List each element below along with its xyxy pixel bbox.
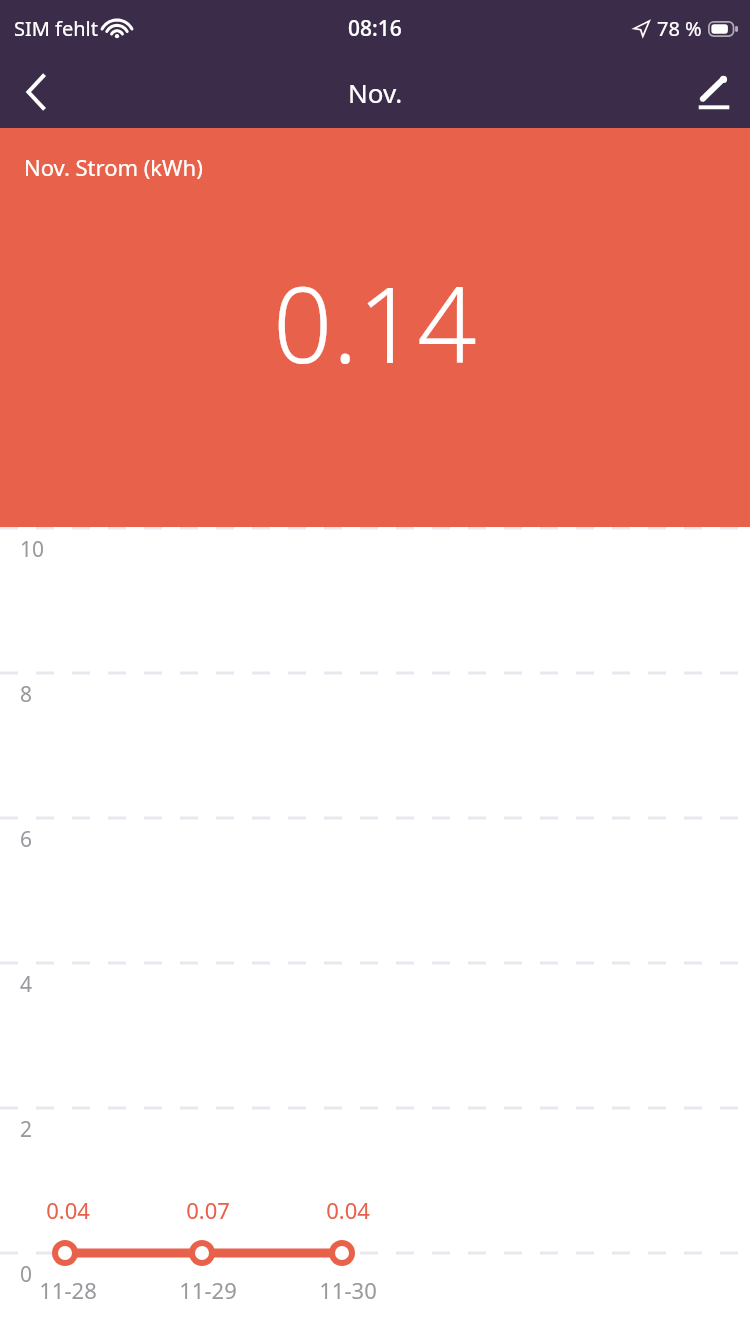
staticText: 0.07 bbox=[163, 1195, 253, 1225]
button[interactable]: 11-28 bbox=[13, 1275, 123, 1305]
button[interactable]: 11-29 bbox=[153, 1275, 263, 1305]
staticText: 4 bbox=[20, 970, 33, 999]
button[interactable]: Back bbox=[0, 56, 72, 128]
staticText: 2 bbox=[20, 1115, 33, 1144]
staticText: Nov. bbox=[348, 75, 403, 110]
staticText: 0.14 bbox=[273, 252, 477, 394]
staticText: 0.04 bbox=[23, 1195, 113, 1225]
staticText: 11-29 bbox=[153, 1275, 263, 1305]
staticText: SIM fehlt bbox=[14, 15, 98, 42]
staticText: 0.04 bbox=[303, 1195, 393, 1225]
staticText: 8 bbox=[20, 680, 33, 709]
staticText: 11-28 bbox=[13, 1275, 123, 1305]
button[interactable]: Edit bbox=[678, 56, 750, 128]
staticText: 11-30 bbox=[293, 1275, 403, 1305]
staticText: Nov. Strom (kWh) bbox=[24, 152, 203, 182]
staticText: 6 bbox=[20, 825, 33, 854]
staticText: 0 bbox=[20, 1260, 33, 1289]
staticText: 10 bbox=[20, 535, 45, 564]
staticText: 78 % bbox=[657, 15, 702, 42]
staticText: 08:16 bbox=[348, 14, 402, 43]
button[interactable]: 11-30 bbox=[293, 1275, 403, 1305]
